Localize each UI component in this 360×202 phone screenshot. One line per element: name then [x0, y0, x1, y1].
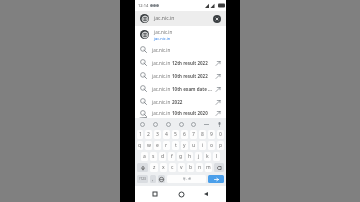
- button[interactable]: k: [204, 152, 211, 161]
- staticText: d: [161, 153, 165, 160]
- button[interactable]: Keyboard tool 6: [202, 120, 210, 128]
- button[interactable]: l: [213, 152, 220, 161]
- button[interactable]: d: [159, 152, 166, 161]
- button[interactable]: Clear: [213, 15, 221, 23]
- button[interactable]: h: [186, 152, 193, 161]
- button[interactable]: Insert suggestion: [213, 98, 221, 106]
- button[interactable]: v: [178, 163, 185, 172]
- button[interactable]: Insert suggestion: [213, 85, 221, 93]
- button[interactable]: Keyboard tool 7: [215, 120, 223, 128]
- button[interactable]: 2: [145, 130, 152, 139]
- button[interactable]: e: [154, 141, 161, 150]
- staticText: m: [206, 164, 211, 171]
- button[interactable]: jac.nic.in: [135, 11, 226, 26]
- button[interactable]: ,: [150, 175, 156, 183]
- button[interactable]: x: [160, 163, 167, 172]
- staticText: p: [219, 142, 223, 149]
- button[interactable]: Search: [135, 95, 226, 108]
- other: Search: [140, 98, 147, 105]
- staticText: l: [216, 153, 218, 160]
- button[interactable]: 0: [217, 130, 224, 139]
- button[interactable]: Space: [167, 175, 206, 183]
- staticText: 4: [165, 131, 168, 138]
- button[interactable]: c: [169, 163, 176, 172]
- staticText: v: [180, 164, 183, 171]
- staticText: 10th result 2020: [172, 110, 208, 116]
- button[interactable]: Keyboard tool 5: [189, 120, 197, 128]
- button[interactable]: r: [163, 141, 170, 150]
- staticText: ?123: [139, 177, 146, 181]
- button[interactable]: Insert suggestion: [213, 59, 221, 67]
- button[interactable]: Keyboard tool 3: [164, 120, 172, 128]
- button[interactable]: g: [177, 152, 184, 161]
- button[interactable]: ?123: [137, 175, 148, 183]
- button[interactable]: Search: [135, 56, 226, 69]
- button[interactable]: q: [137, 141, 143, 150]
- staticText: jac.nic.in: [154, 29, 173, 35]
- staticText: w: [147, 142, 151, 149]
- staticText: y: [183, 142, 186, 149]
- button[interactable]: Backspace: [214, 163, 224, 172]
- button[interactable]: i: [199, 141, 206, 150]
- button[interactable]: z: [150, 163, 158, 172]
- button[interactable]: j: [195, 152, 202, 161]
- button[interactable]: Change language: [158, 175, 165, 183]
- button[interactable]: Home: [175, 188, 187, 200]
- button[interactable]: jac.nic.in: [135, 26, 226, 43]
- button[interactable]: 7: [190, 130, 197, 139]
- staticText: i: [202, 142, 204, 149]
- button[interactable]: Back: [200, 188, 212, 200]
- button[interactable]: n: [196, 163, 203, 172]
- staticText: jac.nic.in: [154, 15, 175, 22]
- button[interactable]: m: [205, 163, 212, 172]
- button[interactable]: 4: [163, 130, 170, 139]
- staticText: 10th exam date 2022: [172, 86, 213, 92]
- staticText: j: [198, 153, 200, 160]
- button[interactable]: 5: [172, 130, 179, 139]
- staticText: g: [179, 153, 183, 160]
- staticText: e: [156, 142, 159, 149]
- button[interactable]: f: [168, 152, 175, 161]
- button[interactable]: Shift: [137, 163, 148, 172]
- button[interactable]: 6: [181, 130, 188, 139]
- staticText: x: [162, 164, 165, 171]
- button[interactable]: Insert suggestion: [213, 72, 221, 80]
- button[interactable]: a: [141, 152, 148, 161]
- button[interactable]: p: [217, 141, 224, 150]
- button[interactable]: Search: [135, 69, 226, 82]
- staticText: h: [188, 153, 192, 160]
- button[interactable]: u: [190, 141, 197, 150]
- other: Search: [140, 46, 147, 53]
- button[interactable]: Insert suggestion: [213, 109, 221, 117]
- button[interactable]: 9: [208, 130, 215, 139]
- staticText: q: [138, 142, 142, 149]
- button[interactable]: s: [150, 152, 157, 161]
- button[interactable]: Search: [135, 108, 226, 118]
- staticText: jac.nic.in: [152, 60, 172, 66]
- staticText: 5: [174, 131, 177, 138]
- button[interactable]: Keyboard tool 1: [138, 120, 146, 128]
- button[interactable]: o: [208, 141, 215, 150]
- button[interactable]: w: [145, 141, 152, 150]
- button[interactable]: y: [181, 141, 188, 150]
- button[interactable]: Keyboard tool 2: [151, 120, 159, 128]
- button[interactable]: Keyboard tool 4: [177, 120, 185, 128]
- button[interactable]: Search: [135, 82, 226, 95]
- button[interactable]: b: [187, 163, 194, 172]
- button[interactable]: 1: [137, 130, 143, 139]
- button[interactable]: 8: [199, 130, 206, 139]
- button[interactable]: Search: [135, 43, 226, 56]
- staticText: 12:14: [138, 3, 149, 8]
- staticText: 12th result 2022: [172, 60, 208, 66]
- other: Search: [140, 59, 147, 66]
- staticText: 7: [192, 131, 195, 138]
- staticText: 1: [139, 131, 142, 138]
- button[interactable]: Search: [208, 175, 224, 183]
- staticText: jac.nic.in: [152, 86, 172, 92]
- button[interactable]: t: [172, 141, 179, 150]
- button[interactable]: Recents: [149, 188, 161, 200]
- button[interactable]: 3: [154, 130, 161, 139]
- other: Search: [140, 85, 147, 92]
- staticText: k: [206, 153, 209, 160]
- staticText: 6: [183, 131, 186, 138]
